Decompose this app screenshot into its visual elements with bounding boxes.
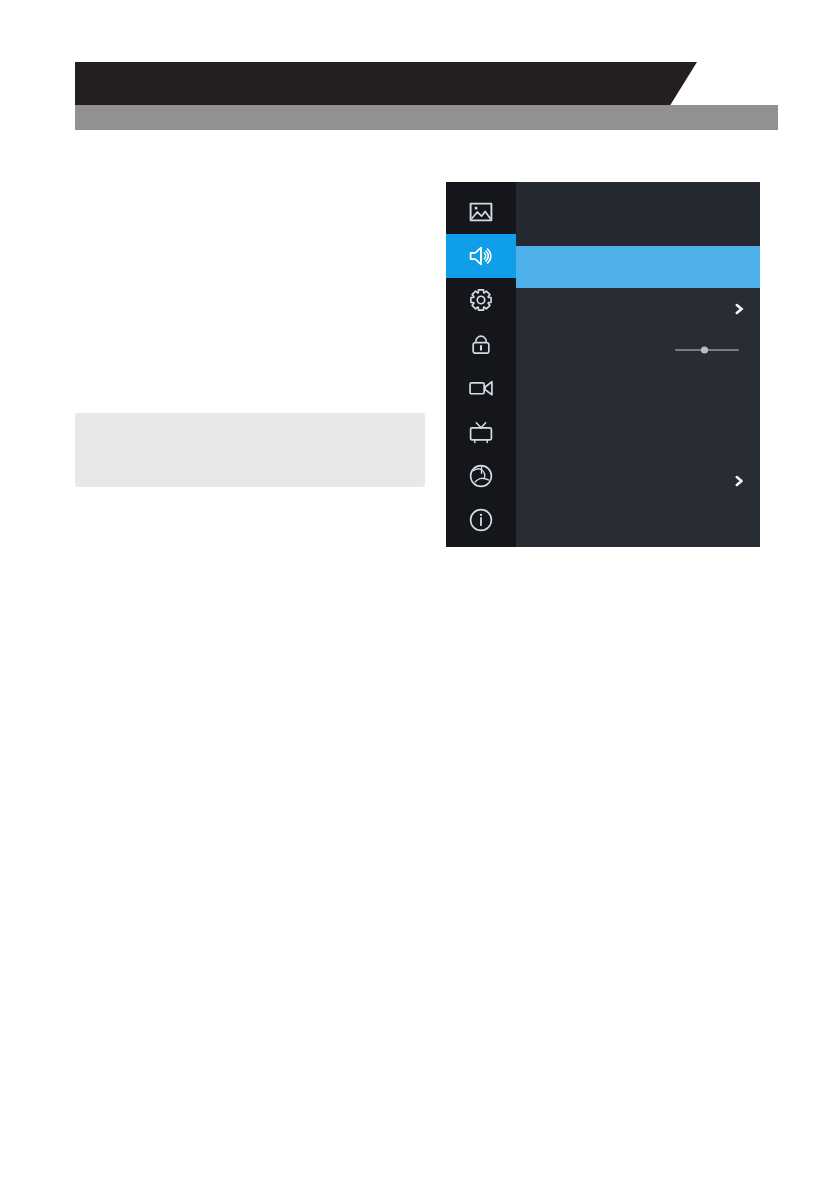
button[interactable]: Open submenu — [516, 457, 760, 505]
button[interactable]: Sound settings — [446, 234, 516, 278]
other: Open submenu — [732, 302, 746, 316]
other: Open submenu — [732, 474, 746, 488]
button[interactable]: Channel settings — [446, 410, 516, 454]
button[interactable]: Open submenu — [516, 288, 760, 330]
button[interactable]: Picture settings — [446, 190, 516, 234]
button[interactable]: Network settings — [446, 454, 516, 498]
button[interactable]: General settings — [446, 278, 516, 322]
button[interactable]: Lock settings — [446, 322, 516, 366]
button[interactable]: Camera settings — [446, 366, 516, 410]
button[interactable] — [516, 330, 760, 370]
button[interactable]: Information — [446, 498, 516, 542]
